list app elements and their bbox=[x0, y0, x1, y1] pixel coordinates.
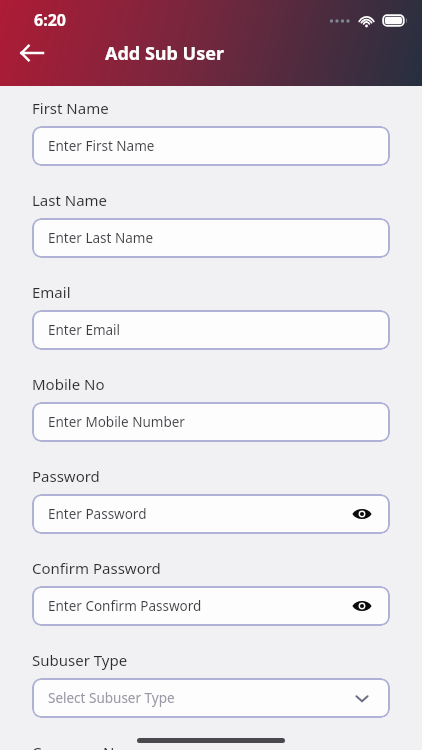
button[interactable]: Toggle password visibility bbox=[350, 502, 374, 526]
staticText: Add Sub User bbox=[105, 41, 224, 66]
staticText: First Name bbox=[32, 98, 109, 118]
staticText: Password bbox=[32, 466, 100, 486]
staticText: Email bbox=[32, 282, 71, 302]
button[interactable]: Enter Last Name bbox=[32, 218, 390, 258]
button[interactable]: Toggle password visibility bbox=[350, 594, 374, 618]
button[interactable]: Enter Email bbox=[32, 310, 390, 350]
button[interactable]: Enter Mobile Number bbox=[32, 402, 390, 442]
button[interactable]: Open dropdown bbox=[350, 686, 374, 710]
staticText: Subuser Type bbox=[32, 650, 128, 670]
button[interactable]: Enter Password bbox=[32, 494, 390, 534]
staticText: Mobile No bbox=[32, 374, 105, 394]
button[interactable]: Back bbox=[12, 33, 52, 73]
button[interactable]: Enter First Name bbox=[32, 126, 390, 166]
staticText: Enter First Name bbox=[48, 137, 374, 155]
staticText: Select Subuser Type bbox=[48, 689, 350, 707]
staticText: Enter Confirm Password bbox=[48, 597, 350, 615]
staticText: Enter Email bbox=[48, 321, 374, 339]
staticText: 6:20 bbox=[34, 9, 66, 31]
button[interactable]: Select Subuser Type bbox=[32, 678, 390, 718]
staticText: Enter Last Name bbox=[48, 229, 374, 247]
staticText: Enter Mobile Number bbox=[48, 413, 374, 431]
staticText: Confirm Password bbox=[32, 558, 161, 578]
staticText: Company Name bbox=[32, 742, 146, 750]
staticText: Last Name bbox=[32, 190, 108, 210]
button[interactable]: Enter Confirm Password bbox=[32, 586, 390, 626]
staticText: Enter Password bbox=[48, 505, 350, 523]
